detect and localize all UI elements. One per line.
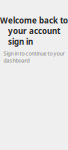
- staticText: Sign in to continue to your dashboard: [3, 50, 64, 64]
- staticText: Welcome back to: [0, 15, 68, 26]
- staticText: your account sign in: [8, 26, 60, 47]
